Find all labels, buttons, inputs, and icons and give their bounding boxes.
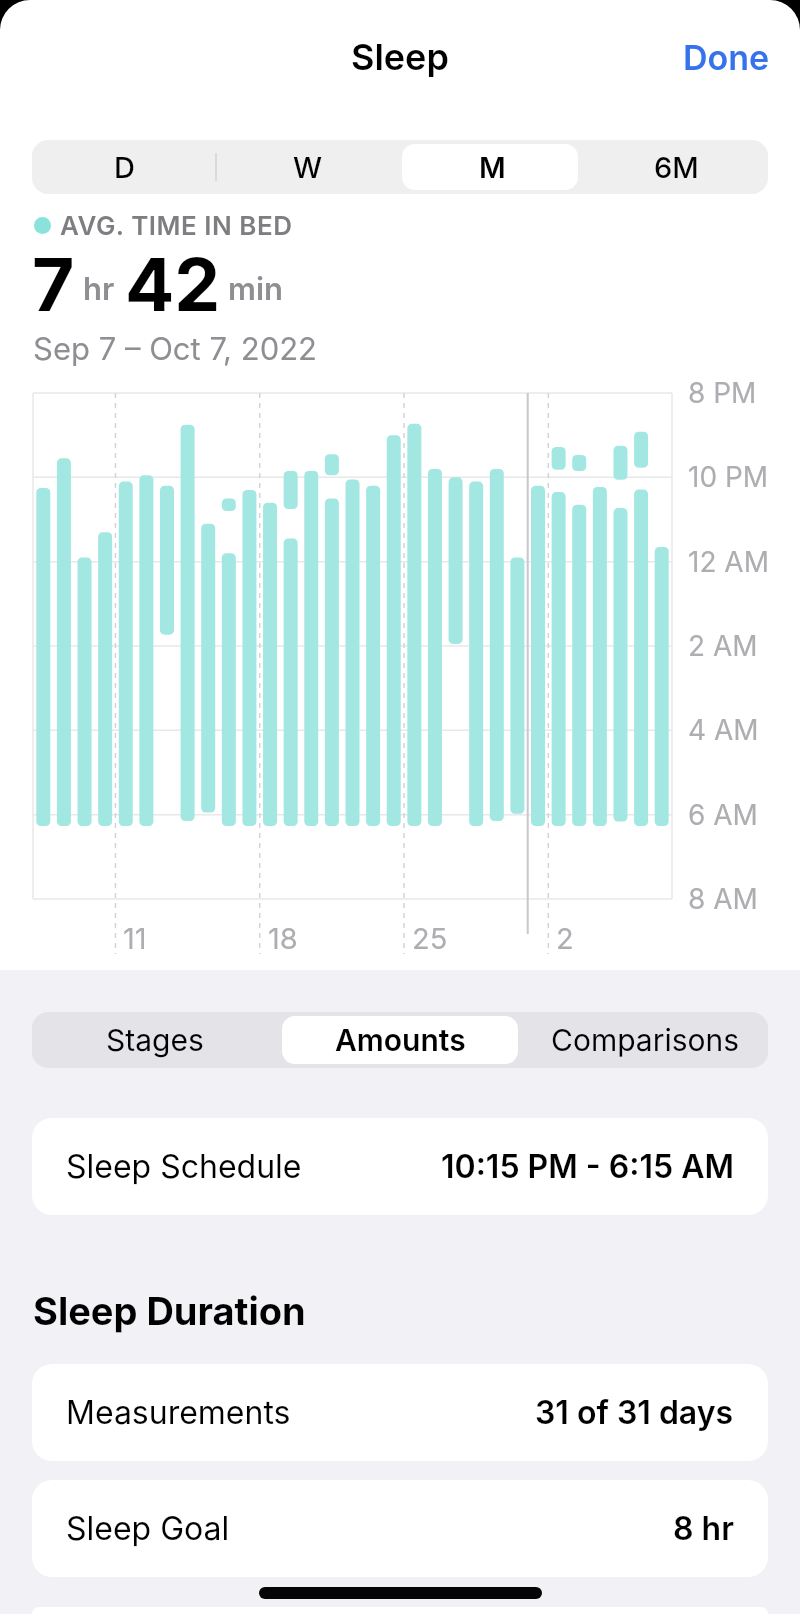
staticText: Sleep	[351, 35, 449, 79]
button[interactable]: Stages	[32, 1012, 278, 1068]
staticText: Stages	[106, 1022, 204, 1058]
button[interactable]: Amounts	[278, 1012, 523, 1068]
staticText: 12 AM	[688, 545, 769, 579]
staticText: 2 AM	[688, 629, 758, 663]
button[interactable]: Done	[683, 37, 770, 78]
staticText: Sleep Schedule	[66, 1147, 302, 1186]
staticText: 31 of 31 days	[535, 1393, 734, 1432]
staticText: Sleep Duration	[33, 1288, 306, 1334]
staticText: M	[479, 150, 506, 185]
staticText: min	[228, 270, 283, 308]
button[interactable]: D	[32, 140, 216, 194]
staticText: 6 AM	[688, 798, 758, 832]
staticText: hr	[83, 270, 115, 308]
staticText: D	[114, 150, 135, 185]
button[interactable]: Comparisons	[523, 1012, 768, 1068]
staticText: 25	[412, 921, 448, 956]
staticText: AVG. TIME IN BED	[60, 210, 293, 240]
staticText: Measurements	[66, 1393, 291, 1432]
staticText: 2	[556, 921, 574, 956]
button[interactable]: M	[400, 140, 584, 194]
staticText: Amounts	[335, 1022, 466, 1058]
staticText: 10:15 PM - 6:15 AM	[441, 1147, 734, 1186]
staticText: 10 PM	[688, 460, 769, 494]
staticText: W	[293, 150, 323, 185]
staticText: 8 PM	[688, 376, 757, 410]
button[interactable]: Sleep Goal	[32, 1480, 768, 1577]
staticText: 42	[125, 240, 221, 328]
staticText: 18	[268, 921, 298, 956]
staticText: Sleep Goal	[66, 1509, 230, 1548]
staticText: 11	[123, 921, 147, 956]
button[interactable]: W	[216, 140, 400, 194]
staticText: 6M	[654, 150, 699, 185]
staticText: 7	[32, 240, 75, 328]
staticText: Done	[683, 37, 770, 78]
staticText: Comparisons	[551, 1022, 740, 1058]
staticText: Sep 7 – Oct 7, 2022	[33, 330, 318, 368]
staticText: 4 AM	[688, 713, 759, 747]
staticText: 8 AM	[688, 882, 758, 916]
staticText: 8 hr	[673, 1509, 734, 1548]
button[interactable]: Measurements	[32, 1364, 768, 1461]
button[interactable]: 6M	[584, 140, 768, 194]
button[interactable]: Sleep Schedule	[32, 1118, 768, 1215]
